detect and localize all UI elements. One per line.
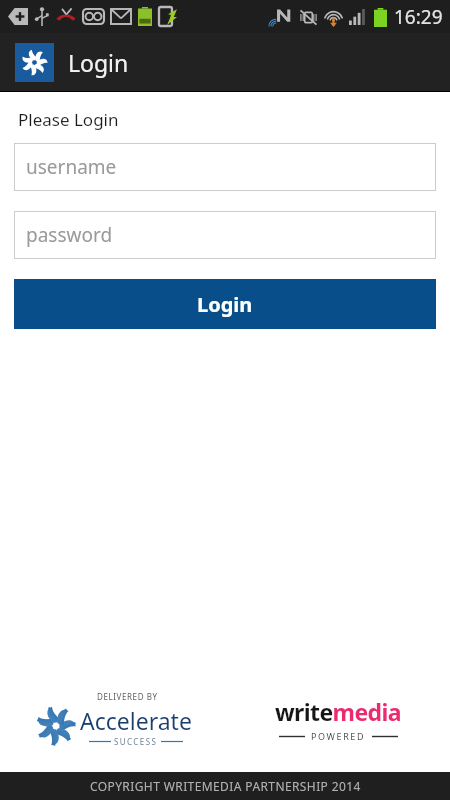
staticText: writemedia bbox=[275, 696, 401, 727]
staticText: Login bbox=[197, 291, 253, 318]
staticText: Accelerate bbox=[80, 705, 192, 736]
staticText: Login bbox=[68, 47, 129, 78]
staticText: DELIVERED BY bbox=[97, 691, 158, 702]
button[interactable]: App logo bbox=[15, 43, 54, 82]
staticText: POWERED bbox=[311, 730, 366, 742]
staticText: username bbox=[26, 154, 117, 180]
staticText: SUCCESS bbox=[114, 736, 158, 747]
staticText: 16:29 bbox=[394, 4, 443, 30]
staticText: password bbox=[26, 222, 113, 248]
staticText: Please Login bbox=[18, 108, 119, 131]
button[interactable]: password bbox=[14, 211, 436, 259]
staticText: COPYRIGHT WRITEMEDIA PARTNERSHIP 2014 bbox=[90, 778, 361, 794]
button[interactable]: Login bbox=[14, 279, 436, 329]
button[interactable]: username bbox=[14, 143, 436, 191]
